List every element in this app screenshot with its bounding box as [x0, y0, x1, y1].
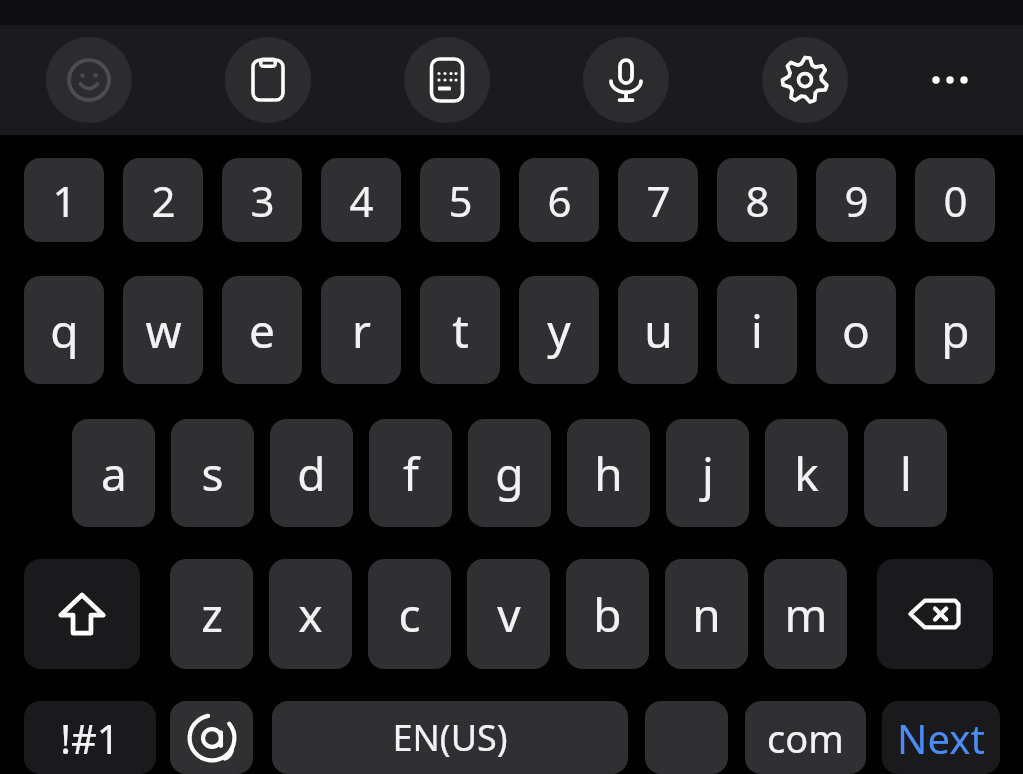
staticText: b — [593, 583, 622, 646]
staticText: EN(US) — [392, 713, 508, 762]
button[interactable]: !#1 — [24, 701, 156, 774]
button[interactable]: r — [321, 276, 401, 384]
staticText: Next — [897, 711, 985, 765]
staticText: j — [702, 442, 714, 505]
staticText: k — [794, 442, 819, 505]
button[interactable]: h — [567, 419, 650, 527]
staticText: com — [767, 712, 844, 764]
staticText: 9 — [844, 172, 869, 229]
button[interactable]: t — [420, 276, 500, 384]
button[interactable]: q — [24, 276, 104, 384]
button[interactable]: a — [72, 419, 155, 527]
button[interactable]: 0 — [915, 158, 995, 242]
staticText: t — [452, 299, 469, 362]
button[interactable]: n — [665, 559, 748, 669]
staticText: w — [145, 299, 182, 362]
button[interactable]: 2 — [123, 158, 203, 242]
staticText: z — [201, 583, 223, 646]
staticText: 5 — [448, 172, 473, 229]
button[interactable]: g — [468, 419, 551, 527]
button[interactable]: d — [270, 419, 353, 527]
button[interactable]: 3 — [222, 158, 302, 242]
staticText: r — [352, 299, 371, 362]
button[interactable]: l — [864, 419, 947, 527]
button[interactable]: 4 — [321, 158, 401, 242]
staticText: p — [941, 299, 970, 362]
staticText: 6 — [547, 172, 572, 229]
staticText: !#1 — [60, 711, 120, 765]
button[interactable]: 7 — [618, 158, 698, 242]
staticText: y — [547, 299, 571, 362]
staticText: e — [249, 299, 275, 362]
button[interactable]: b — [566, 559, 649, 669]
button[interactable]: u — [618, 276, 698, 384]
button[interactable]: Backspace — [877, 559, 993, 669]
button[interactable]: More options — [907, 37, 993, 123]
button[interactable]: 8 — [717, 158, 797, 242]
button[interactable]: One handed keyboard — [404, 37, 490, 123]
button[interactable]: v — [467, 559, 550, 669]
button[interactable]: z — [170, 559, 253, 669]
button[interactable]: m — [764, 559, 847, 669]
button[interactable]: s — [171, 419, 254, 527]
button[interactable]: Settings — [762, 37, 848, 123]
button[interactable]: o — [816, 276, 896, 384]
staticText: 3 — [250, 172, 275, 229]
staticText: 1 — [52, 172, 77, 229]
staticText: 7 — [646, 172, 671, 229]
button[interactable]: At sign — [170, 701, 253, 774]
staticText: v — [497, 583, 521, 646]
staticText: c — [398, 583, 421, 646]
staticText: m — [784, 583, 828, 646]
button[interactable]: 9 — [816, 158, 896, 242]
button[interactable]: p — [915, 276, 995, 384]
staticText: q — [50, 299, 79, 362]
staticText: 4 — [349, 172, 374, 229]
button[interactable]: x — [269, 559, 352, 669]
button[interactable]: e — [222, 276, 302, 384]
staticText: 2 — [151, 172, 176, 229]
button[interactable]: Next — [882, 701, 1000, 774]
staticText: d — [297, 442, 326, 505]
staticText: o — [842, 299, 870, 362]
staticText: 8 — [745, 172, 770, 229]
staticText: s — [201, 442, 224, 505]
button[interactable]: i — [717, 276, 797, 384]
button[interactable]: Clipboard — [225, 37, 311, 123]
staticText: x — [298, 583, 323, 646]
button[interactable]: c — [368, 559, 451, 669]
button[interactable]: 1 — [24, 158, 104, 242]
button[interactable]: Emoji — [46, 37, 132, 123]
staticText: l — [900, 442, 912, 505]
button[interactable]: w — [123, 276, 203, 384]
button[interactable]: Shift — [24, 559, 140, 669]
staticText: h — [594, 442, 623, 505]
staticText: g — [495, 442, 524, 505]
staticText: a — [101, 442, 127, 505]
staticText: f — [403, 442, 419, 505]
button[interactable]: j — [666, 419, 749, 527]
staticText: n — [692, 583, 721, 646]
staticText: 0 — [943, 172, 968, 229]
button[interactable]: 6 — [519, 158, 599, 242]
button[interactable]: f — [369, 419, 452, 527]
button[interactable]: 5 — [420, 158, 500, 242]
button[interactable]: k — [765, 419, 848, 527]
button[interactable]: com — [745, 701, 866, 774]
button[interactable]: Voice input — [583, 37, 669, 123]
button[interactable]: y — [519, 276, 599, 384]
staticText: i — [751, 299, 763, 362]
button[interactable] — [645, 701, 728, 774]
staticText: u — [644, 299, 673, 362]
button[interactable]: EN(US) — [272, 701, 628, 774]
